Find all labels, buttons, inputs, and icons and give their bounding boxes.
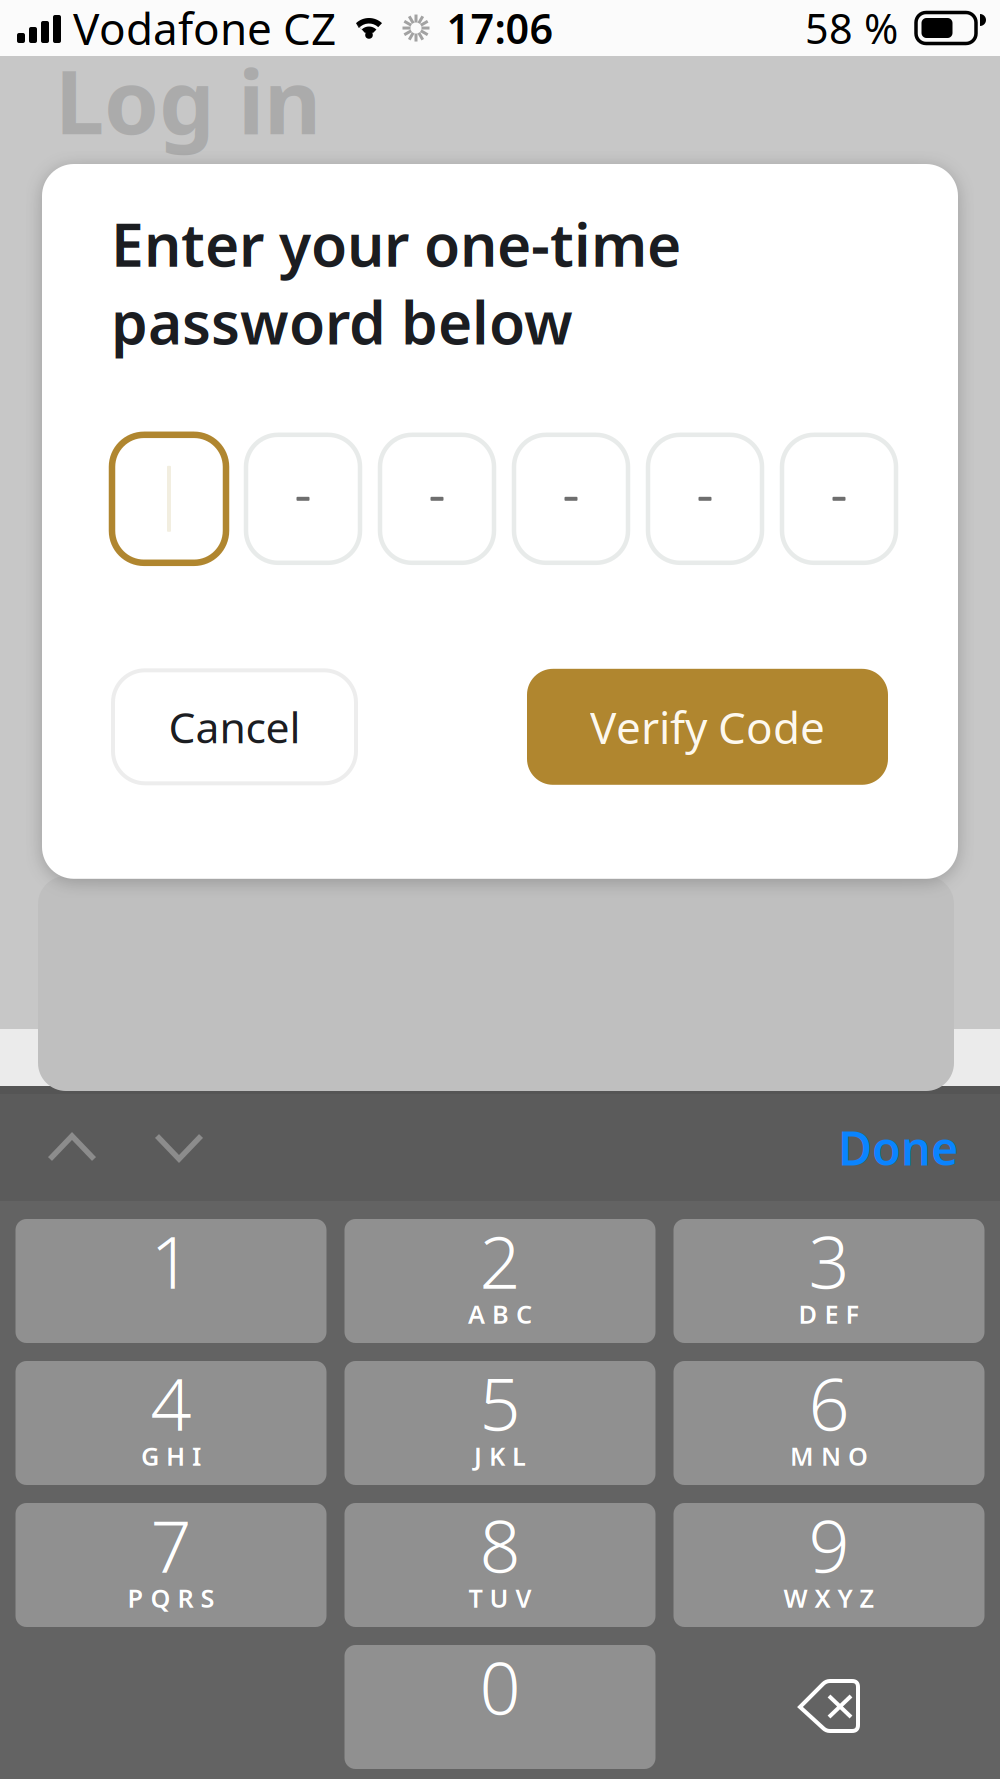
button[interactable]: 3 [673, 1219, 984, 1343]
button[interactable]: Code digit [246, 435, 360, 563]
button[interactable]: Delete [673, 1645, 984, 1769]
button[interactable]: 1 [15, 1219, 326, 1343]
button[interactable]: 8 [344, 1503, 655, 1627]
staticText: 4 [150, 1355, 191, 1451]
staticText: T U V [468, 1581, 531, 1615]
button[interactable]: 6 [673, 1361, 984, 1485]
button[interactable]: Next field [133, 1111, 225, 1184]
staticText: P Q R S [127, 1581, 214, 1615]
staticText: Cancel [168, 698, 300, 755]
button[interactable]: 4 [15, 1361, 326, 1485]
staticText: Vodafone CZ [73, 0, 336, 57]
staticText: 5 [479, 1355, 520, 1451]
staticText: 0 [479, 1639, 520, 1735]
button[interactable]: 2 [344, 1219, 655, 1343]
button[interactable]: Code digit [514, 435, 628, 563]
button[interactable]: Code digit 1, active [112, 435, 226, 563]
staticText: 7 [150, 1497, 191, 1593]
staticText: 8 [479, 1497, 520, 1593]
staticText: D E F [798, 1297, 859, 1331]
staticText: Verify Code [590, 698, 825, 756]
button[interactable]: Cancel [113, 670, 356, 783]
button[interactable]: 5 [344, 1361, 655, 1485]
staticText: G H I [141, 1439, 201, 1473]
button[interactable]: Previous field [26, 1111, 118, 1184]
button[interactable]: 0 [344, 1645, 655, 1769]
button[interactable]: 9 [673, 1503, 984, 1627]
staticText: W X Y Z [783, 1581, 874, 1615]
button[interactable]: Code digit [782, 435, 896, 563]
staticText: 1 [150, 1213, 191, 1309]
staticText: Enter your one-time password below [111, 205, 681, 361]
button[interactable]: Verify Code [527, 669, 888, 785]
button[interactable]: Code digit [380, 435, 494, 563]
staticText: Log in [55, 42, 321, 158]
staticText: J K L [474, 1439, 526, 1473]
staticText: Done [838, 1116, 958, 1178]
staticText: 3 [808, 1213, 849, 1309]
staticText: 2 [479, 1213, 520, 1309]
button[interactable]: Done [818, 1096, 978, 1198]
staticText: M N O [790, 1439, 868, 1473]
staticText: 17:06 [446, 1, 553, 55]
button[interactable]: Code digit [648, 435, 762, 563]
staticText: 9 [808, 1497, 849, 1593]
staticText: 6 [808, 1355, 849, 1451]
staticText: 58 % [805, 1, 898, 55]
button[interactable]: 7 [15, 1503, 326, 1627]
staticText: A B C [468, 1297, 532, 1331]
